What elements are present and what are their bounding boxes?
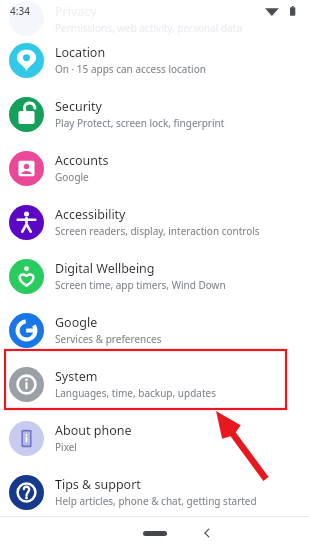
staticText: Google: [55, 170, 89, 184]
staticText: On · 15 apps can access location: [55, 62, 206, 76]
button[interactable]: About phone: [0, 411, 309, 465]
staticText: Location: [55, 44, 106, 61]
button[interactable]: System: [0, 357, 309, 411]
staticText: System: [55, 368, 98, 385]
button[interactable]: Tips & support: [0, 465, 309, 519]
staticText: 4:34: [10, 4, 30, 18]
staticText: Digital Wellbeing: [55, 260, 155, 277]
button[interactable]: Accessibility: [0, 195, 309, 249]
button[interactable]: Location: [0, 33, 309, 87]
staticText: Play Protect, screen lock, fingerprint: [55, 116, 225, 130]
staticText: Accounts: [55, 152, 109, 169]
button[interactable]: Back: [52, 516, 309, 550]
button[interactable]: Accounts: [0, 141, 309, 195]
button[interactable]: Google: [0, 303, 309, 357]
staticText: Languages, time, backup, updates: [55, 386, 216, 400]
staticText: About phone: [55, 422, 132, 439]
staticText: Permissions, web activity, personal data: [55, 21, 243, 35]
staticText: Screen time, app timers, Wind Down: [55, 278, 226, 292]
staticText: Security: [55, 98, 102, 115]
staticText: Tips & support: [55, 476, 141, 493]
staticText: Services & preferences: [55, 332, 162, 346]
button[interactable]: Home: [133, 523, 177, 543]
staticText: Pixel: [55, 440, 77, 454]
staticText: Help articles, phone & chat, getting sta…: [55, 494, 257, 508]
button[interactable]: Digital Wellbeing: [0, 249, 309, 303]
staticText: Privacy: [55, 3, 97, 20]
button[interactable]: Security: [0, 87, 309, 141]
staticText: Google: [55, 314, 98, 331]
staticText: Accessibility: [55, 206, 126, 223]
staticText: Screen readers, display, interaction con…: [55, 224, 260, 238]
